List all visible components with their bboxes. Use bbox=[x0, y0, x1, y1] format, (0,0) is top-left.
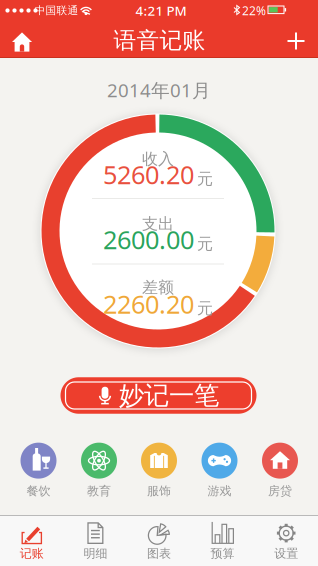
button[interactable]: 教育 bbox=[71, 439, 127, 501]
staticText: 图表 bbox=[147, 546, 171, 561]
staticText: 预算 bbox=[211, 546, 235, 561]
staticText: 明细 bbox=[83, 546, 107, 561]
button[interactable]: 图表 bbox=[127, 516, 191, 566]
button[interactable]: Home bbox=[2, 23, 42, 61]
staticText: 元 bbox=[197, 169, 213, 189]
staticText: 元 bbox=[197, 299, 213, 318]
staticText: 记账 bbox=[20, 546, 44, 561]
staticText: 妙记一笔 bbox=[119, 380, 219, 411]
staticText: 收入 bbox=[142, 149, 174, 169]
staticText: 2600.00 bbox=[103, 223, 194, 256]
button[interactable]: 房贷 bbox=[252, 439, 308, 501]
staticText: 4:21 PM bbox=[135, 2, 186, 19]
staticText: 语音记账 bbox=[113, 27, 205, 54]
staticText: 设置 bbox=[274, 546, 298, 561]
button[interactable]: Add bbox=[276, 22, 316, 60]
staticText: 5260.20 bbox=[103, 158, 194, 191]
staticText: 元 bbox=[197, 234, 213, 254]
staticText: 差额 bbox=[142, 278, 174, 297]
button[interactable]: 明细 bbox=[64, 516, 127, 566]
button[interactable]: 妙记一笔 bbox=[60, 377, 256, 414]
staticText: 游戏 bbox=[207, 484, 231, 498]
button[interactable]: 服饰 bbox=[131, 439, 187, 501]
staticText: 服饰 bbox=[147, 484, 171, 498]
staticText: 中国联通 bbox=[34, 4, 78, 17]
staticText: 22% bbox=[242, 2, 266, 18]
button[interactable]: 设置 bbox=[254, 516, 318, 566]
button[interactable]: 餐饮 bbox=[10, 439, 66, 501]
button[interactable]: 预算 bbox=[191, 516, 254, 566]
staticText: 餐饮 bbox=[26, 484, 50, 498]
button[interactable]: 游戏 bbox=[191, 439, 247, 501]
staticText: 支出 bbox=[142, 214, 174, 234]
staticText: 2014年01月 bbox=[107, 78, 211, 102]
button[interactable]: 记账 bbox=[0, 516, 64, 566]
staticText: 教育 bbox=[87, 484, 111, 498]
staticText: 房贷 bbox=[268, 484, 292, 498]
staticText: 2260.20 bbox=[103, 287, 194, 321]
